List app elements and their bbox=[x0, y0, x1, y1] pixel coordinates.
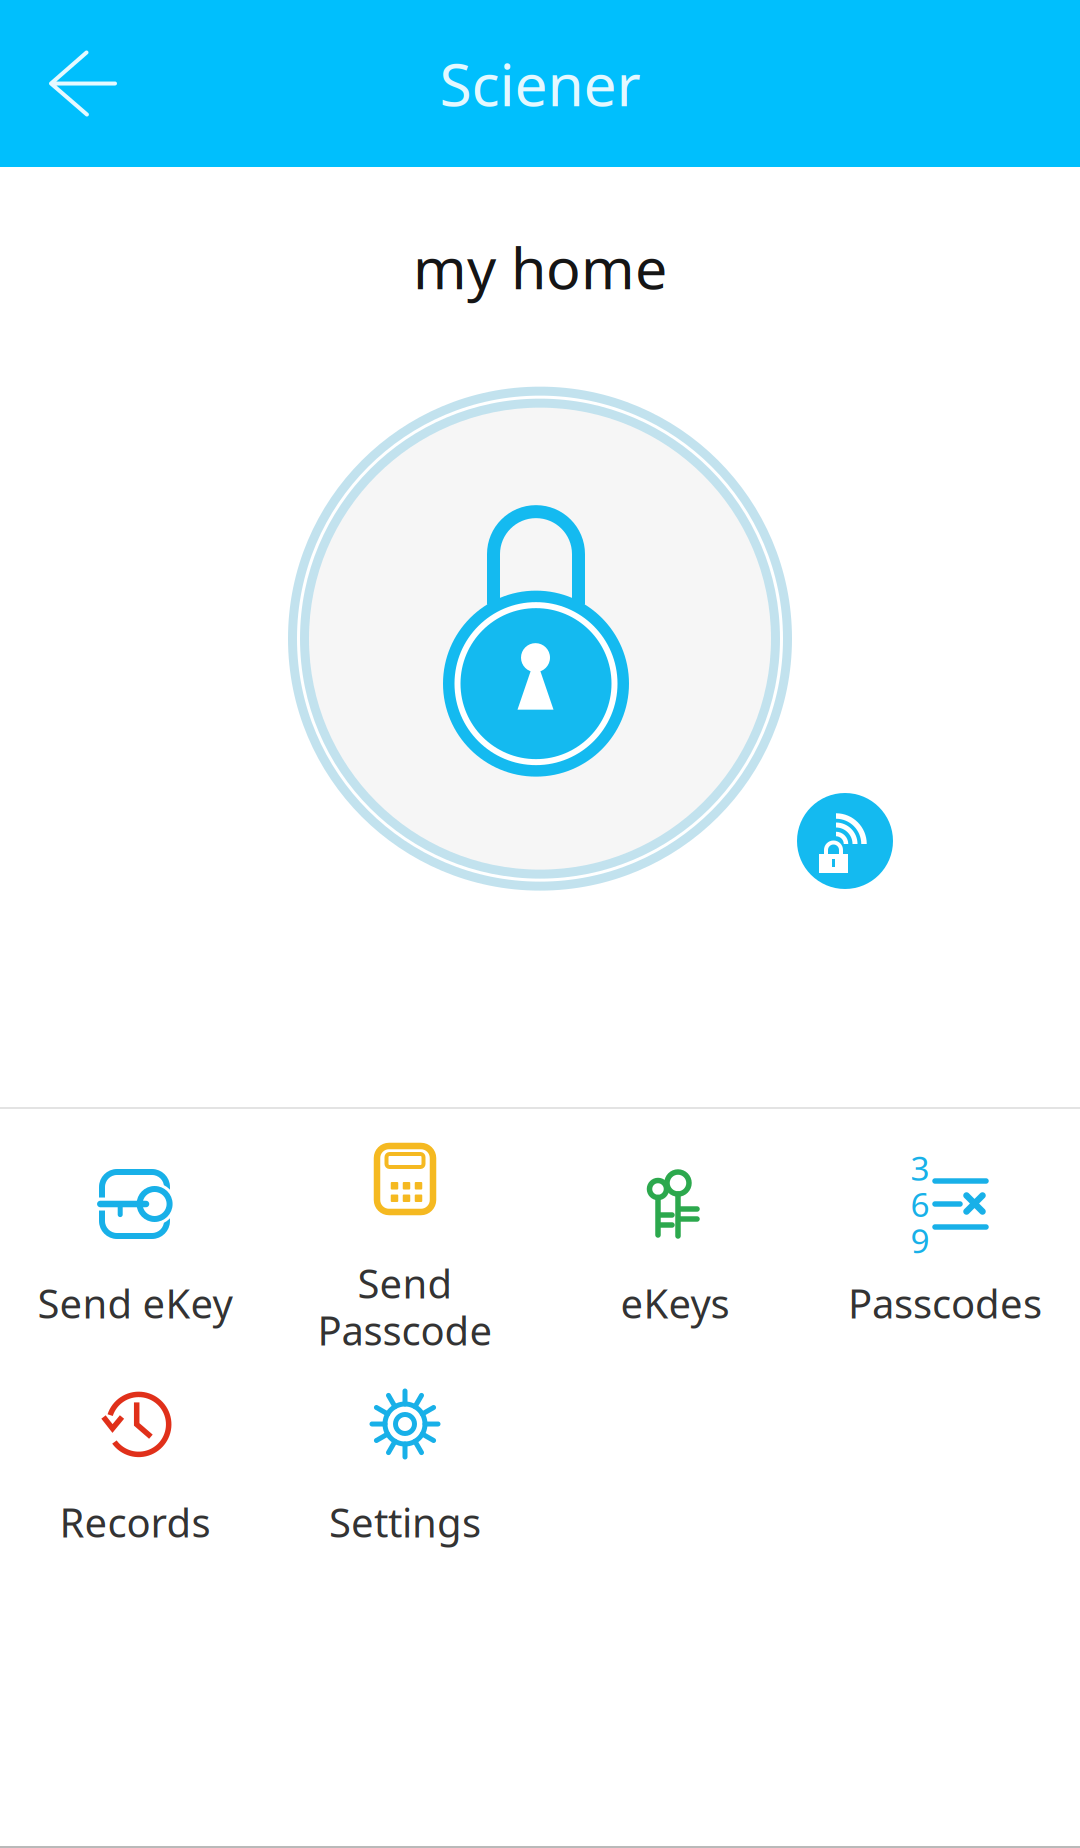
staticText: Passcode bbox=[317, 1303, 492, 1356]
staticText: Settings bbox=[329, 1495, 481, 1548]
button[interactable]: Remote unlock bbox=[797, 793, 893, 889]
staticText: Send bbox=[357, 1256, 452, 1309]
staticText: 6 bbox=[910, 1182, 929, 1226]
button[interactable]: Send eKey bbox=[0, 1109, 270, 1328]
staticText: Passcodes bbox=[848, 1276, 1042, 1329]
button[interactable]: Records bbox=[0, 1328, 270, 1547]
staticText: Sciener bbox=[439, 44, 640, 122]
button[interactable]: Send bbox=[270, 1109, 540, 1328]
staticText: 9 bbox=[910, 1218, 929, 1262]
staticText: my home bbox=[413, 229, 667, 305]
button[interactable]: Settings bbox=[270, 1328, 540, 1547]
staticText: Send eKey bbox=[37, 1276, 232, 1329]
button[interactable]: 3 bbox=[810, 1109, 1080, 1328]
button[interactable]: Back bbox=[0, 13, 140, 153]
staticText: Records bbox=[59, 1495, 210, 1548]
button[interactable]: eKeys bbox=[540, 1109, 810, 1328]
staticText: eKeys bbox=[620, 1276, 729, 1329]
staticText: 3 bbox=[910, 1146, 929, 1190]
